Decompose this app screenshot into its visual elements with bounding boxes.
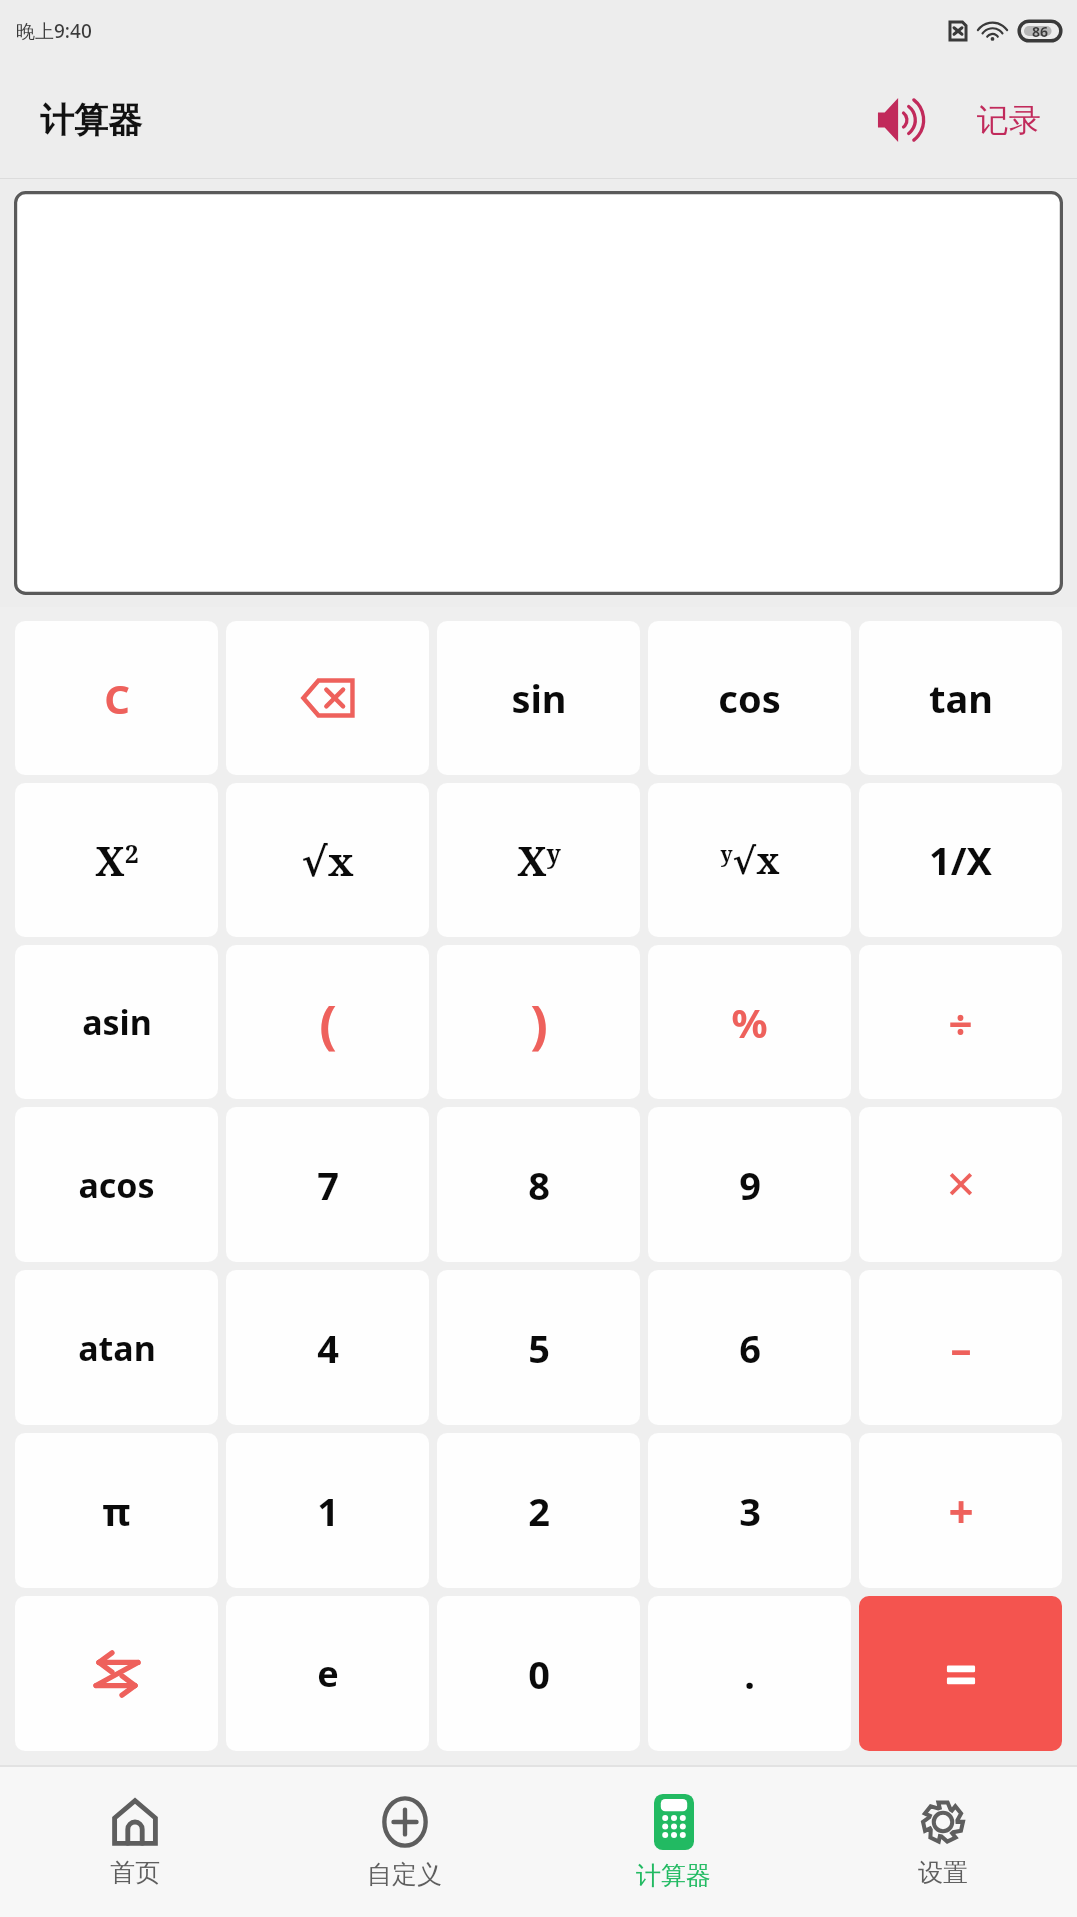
button[interactable]: atan (15, 1270, 218, 1425)
button[interactable]: X2 (15, 783, 218, 937)
button[interactable]: y√x (648, 783, 851, 937)
button[interactable]: sin (437, 621, 640, 775)
staticText: acos (78, 1162, 155, 1208)
staticText: 2 (528, 1485, 550, 1537)
staticText: e (317, 1649, 339, 1698)
staticText: 计算器 (636, 1860, 711, 1891)
button[interactable]: + (859, 1433, 1062, 1588)
staticText: Xy (517, 833, 561, 887)
button[interactable]: 6 (648, 1270, 851, 1425)
button[interactable]: ( (226, 945, 429, 1099)
button[interactable]: 4 (226, 1270, 429, 1425)
button[interactable]: e (226, 1596, 429, 1751)
button[interactable]: Backspace (226, 621, 429, 775)
button[interactable]: √x (226, 783, 429, 937)
staticText: ( (319, 987, 337, 1058)
button[interactable]: Sound (855, 78, 939, 162)
staticText: 晚上9:40 (16, 18, 92, 44)
staticText: 4 (317, 1322, 339, 1374)
button[interactable]: 3 (648, 1433, 851, 1588)
staticText: 6 (739, 1322, 761, 1374)
staticText: 8 (528, 1159, 550, 1211)
button[interactable]: ✕ (859, 1107, 1062, 1262)
staticText: 5 (528, 1322, 550, 1374)
staticText: X2 (95, 833, 139, 887)
staticText: 3 (739, 1485, 761, 1537)
staticText: atan (78, 1325, 156, 1371)
staticText: sin (511, 672, 567, 724)
button[interactable]: 自定义 (270, 1767, 539, 1917)
staticText: 记录 (977, 100, 1041, 140)
button[interactable]: π (15, 1433, 218, 1588)
staticText: 1 (317, 1485, 339, 1537)
button[interactable]: 5 (437, 1270, 640, 1425)
staticText: . (744, 1648, 755, 1700)
button[interactable]: 记录 (967, 92, 1051, 148)
button[interactable]: 9 (648, 1107, 851, 1262)
staticText: π (102, 1485, 131, 1537)
button[interactable]: 2 (437, 1433, 640, 1588)
button[interactable]: Xy (437, 783, 640, 937)
button[interactable]: 7 (226, 1107, 429, 1262)
button[interactable]: % (648, 945, 851, 1099)
button[interactable]: 计算器 (539, 1767, 808, 1917)
staticText: asin (82, 999, 152, 1045)
button[interactable]: 设置 (808, 1767, 1077, 1917)
button[interactable]: tan (859, 621, 1062, 775)
button[interactable]: 0 (437, 1596, 640, 1751)
button[interactable]: Swap (15, 1596, 218, 1751)
button[interactable]: – (859, 1270, 1062, 1425)
staticText: 7 (317, 1159, 339, 1211)
staticText: 设置 (918, 1857, 968, 1888)
staticText: 首页 (110, 1857, 160, 1888)
staticText: 86 (1032, 22, 1049, 41)
button[interactable]: C (15, 621, 218, 775)
staticText: – (950, 1319, 972, 1376)
staticText: √x (301, 833, 354, 887)
staticText: 1/X (929, 834, 992, 886)
staticText: 自定义 (367, 1859, 442, 1890)
staticText: tan (929, 672, 993, 724)
button[interactable]: 首页 (0, 1767, 270, 1917)
button[interactable]: ÷ (859, 945, 1062, 1099)
button[interactable] (859, 1596, 1062, 1751)
button[interactable]: . (648, 1596, 851, 1751)
staticText: ✕ (945, 1163, 977, 1207)
staticText: ) (530, 987, 548, 1058)
button[interactable]: 1 (226, 1433, 429, 1588)
staticText: C (104, 671, 130, 725)
staticText: ÷ (948, 994, 973, 1051)
button[interactable]: asin (15, 945, 218, 1099)
button[interactable]: 1/X (859, 783, 1062, 937)
button[interactable]: 8 (437, 1107, 640, 1262)
staticText: 计算器 (40, 99, 142, 142)
button[interactable]: cos (648, 621, 851, 775)
button[interactable]: ) (437, 945, 640, 1099)
button[interactable]: acos (15, 1107, 218, 1262)
staticText: 9 (739, 1159, 761, 1211)
staticText: + (948, 1481, 974, 1541)
staticText: y√x (720, 836, 780, 885)
staticText: % (731, 995, 768, 1049)
staticText: cos (718, 672, 781, 724)
staticText: 0 (528, 1648, 550, 1700)
